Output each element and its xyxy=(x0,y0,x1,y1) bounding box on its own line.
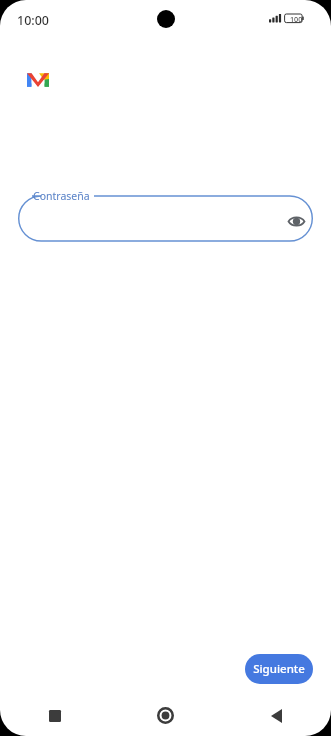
button[interactable]: Recientes xyxy=(0,695,110,736)
staticText: Siguiente xyxy=(253,661,305,677)
staticText: 100 xyxy=(290,14,303,24)
button[interactable]: Siguiente xyxy=(245,654,313,684)
button[interactable]: Gmail xyxy=(20,62,56,98)
button[interactable]: Mostrar contraseña xyxy=(279,204,313,238)
staticText: Contraseña xyxy=(33,189,90,203)
staticText: 10:00 xyxy=(17,12,50,29)
button[interactable]: Inicio xyxy=(110,695,221,736)
button[interactable]: Atrás xyxy=(221,695,331,736)
